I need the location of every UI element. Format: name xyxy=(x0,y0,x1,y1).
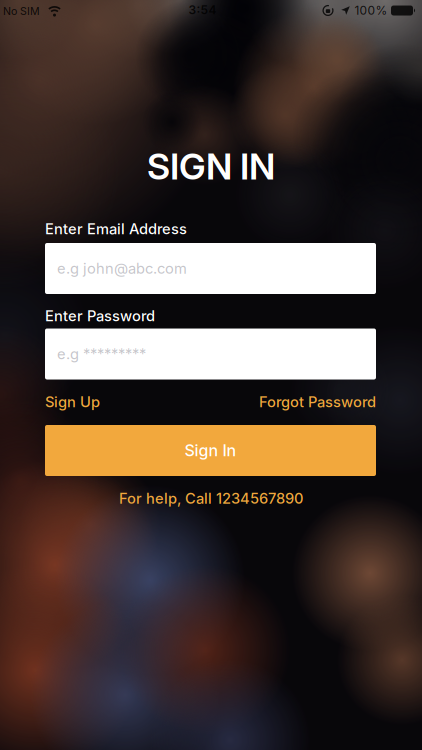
button[interactable]: Sign Up xyxy=(45,393,100,411)
staticText: No SIM xyxy=(3,5,40,17)
staticText: e.g john@abc.com xyxy=(57,260,187,277)
staticText: Sign Up xyxy=(45,393,100,411)
staticText: For help, Call 1234567890 xyxy=(119,490,303,507)
staticText: Sign In xyxy=(184,441,236,460)
staticText: e.g ********* xyxy=(57,345,146,363)
staticText: 3:54 xyxy=(188,3,216,17)
staticText: Enter Email Address xyxy=(45,220,187,238)
button[interactable]: Sign In xyxy=(45,425,376,476)
button[interactable]: Forgot Password xyxy=(259,393,376,411)
staticText: 100% xyxy=(354,3,387,18)
button[interactable]: For help, Call 1234567890 xyxy=(119,490,303,507)
staticText: Enter Password xyxy=(45,307,155,325)
button[interactable]: e.g john@abc.com xyxy=(45,243,376,294)
staticText: Forgot Password xyxy=(259,393,376,411)
staticText: SIGN IN xyxy=(147,145,275,188)
button[interactable]: e.g ********* xyxy=(45,328,376,379)
